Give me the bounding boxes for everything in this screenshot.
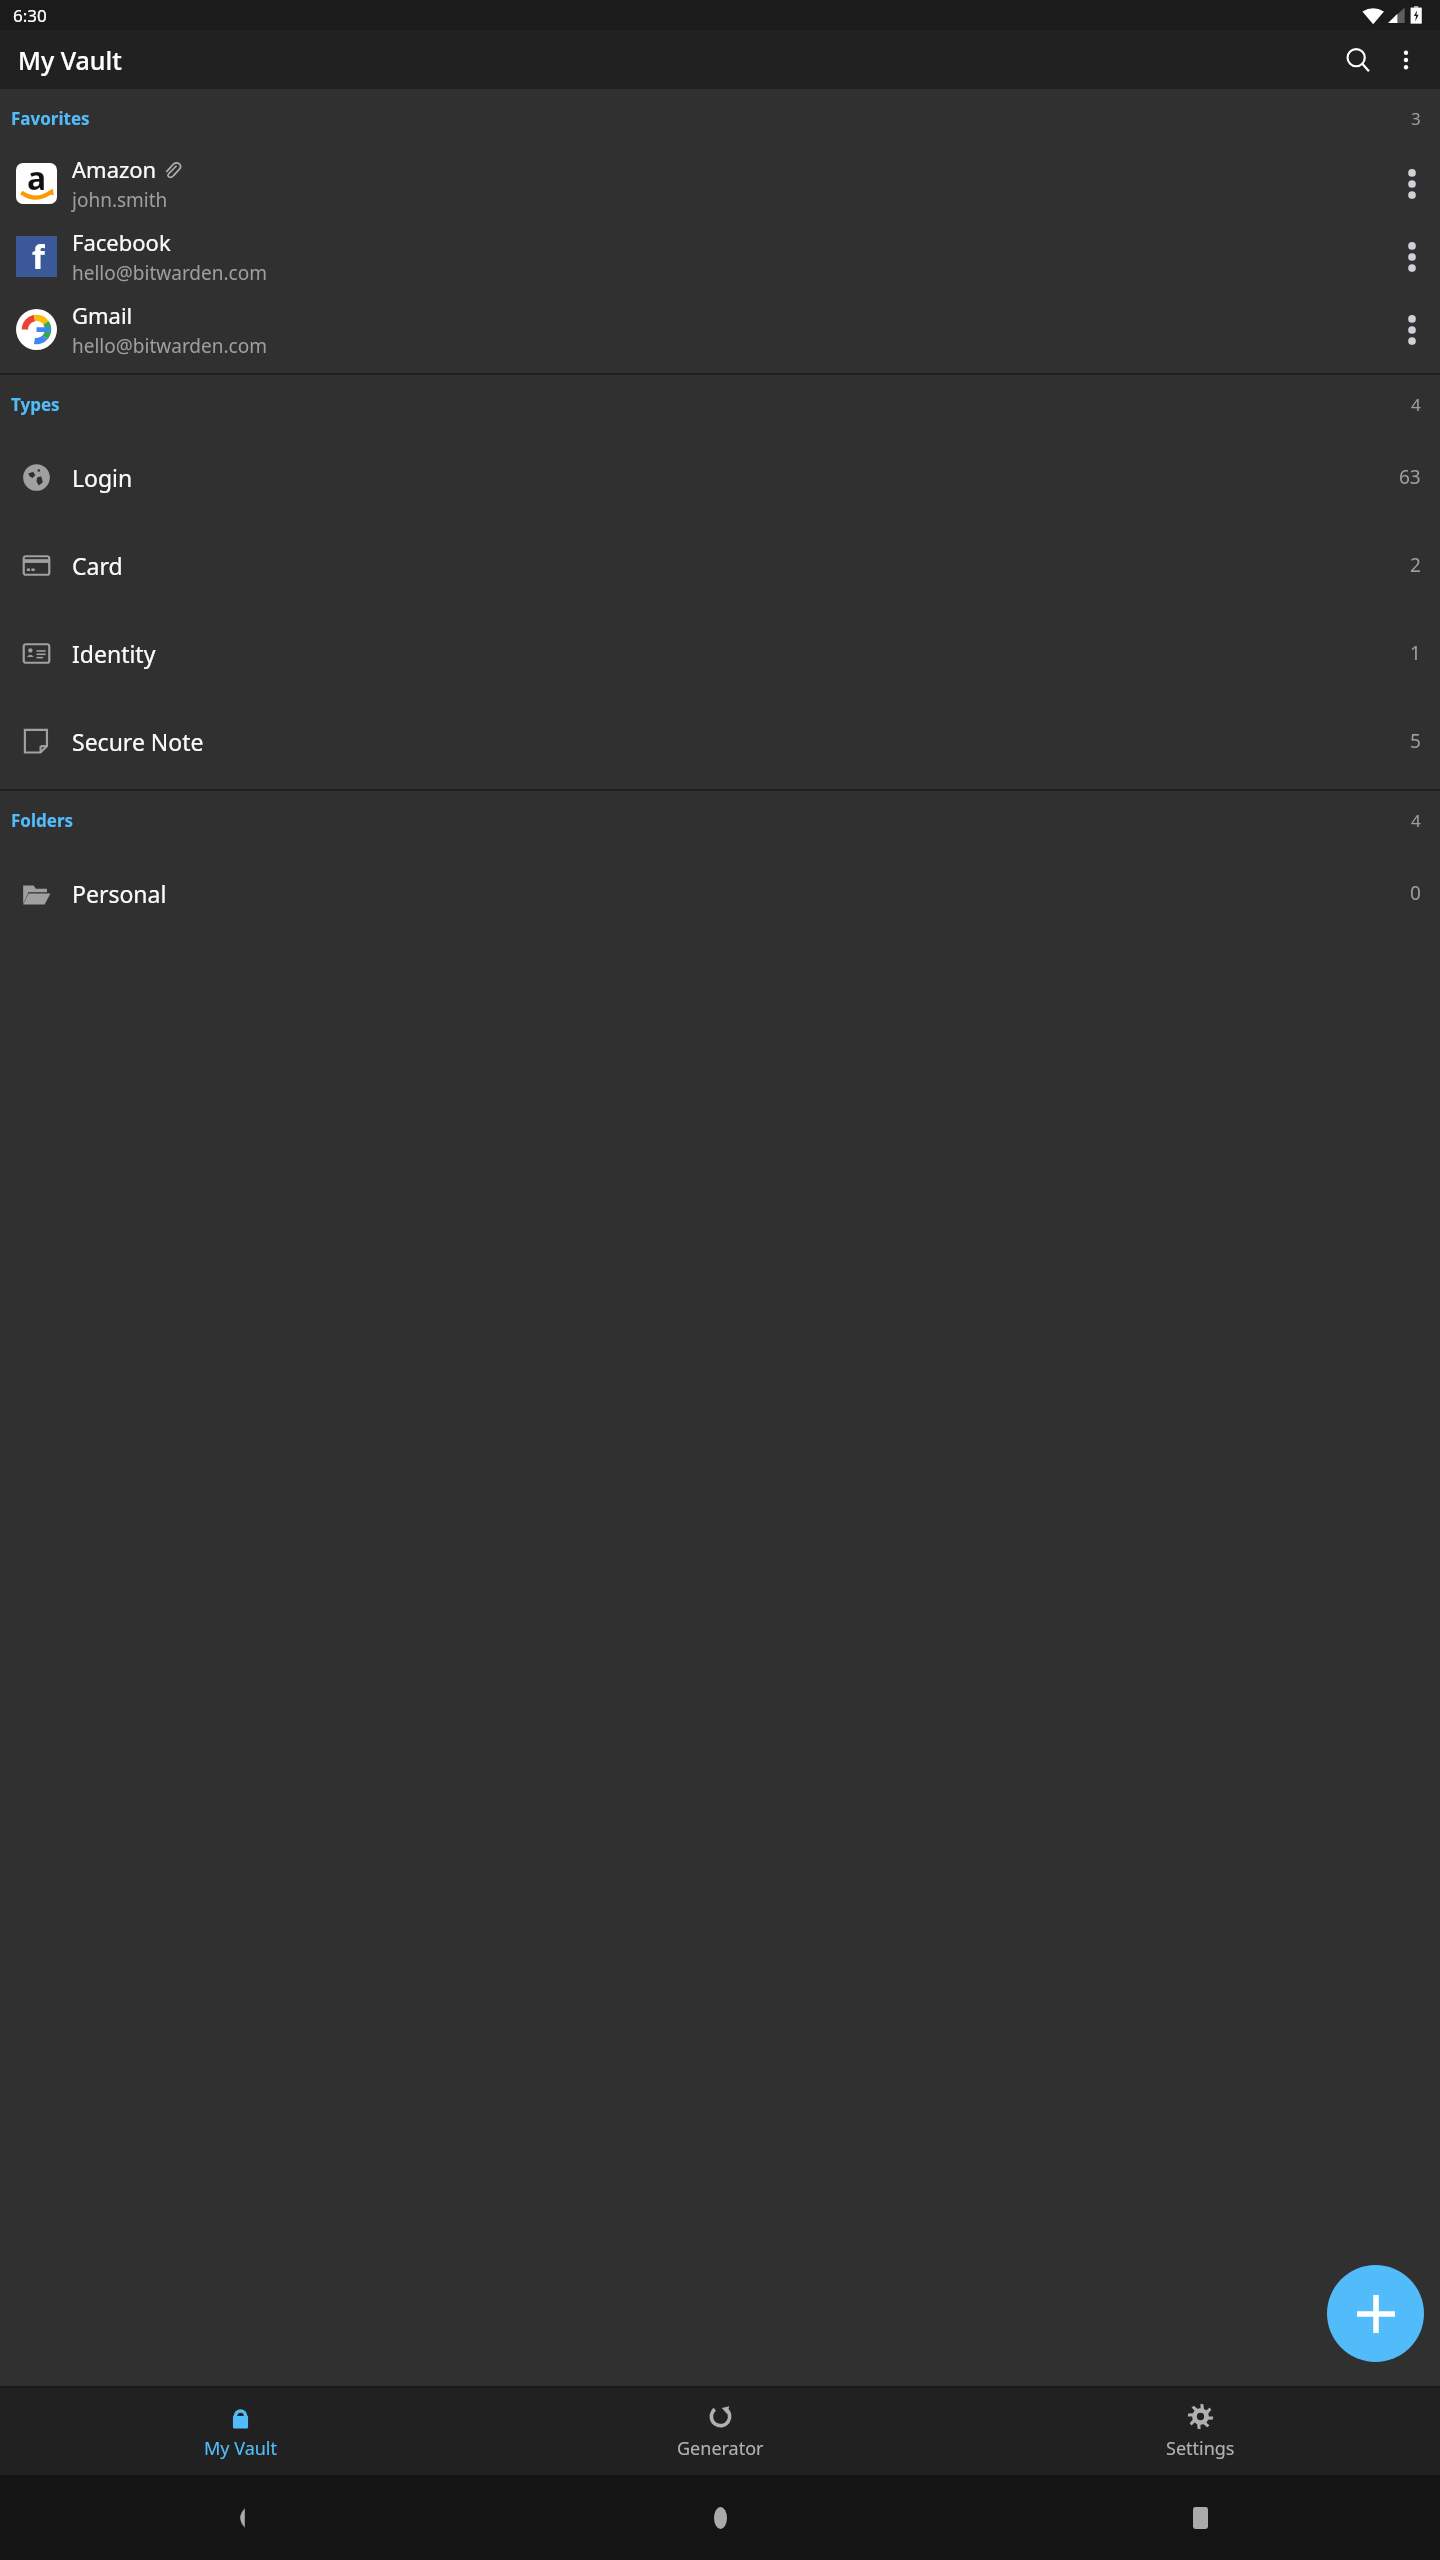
staticText: Facebook [72,227,171,257]
button[interactable]: Secure Note [0,697,1440,785]
button[interactable]: Login [0,433,1440,521]
button[interactable]: Item options [1384,147,1440,220]
staticText: hello@bitwarden.com [72,333,267,359]
button[interactable]: Generator [480,2388,960,2475]
button[interactable]: Item options [1384,220,1440,293]
staticText: f [32,234,45,275]
staticText: 63 [1399,464,1421,490]
button[interactable]: More options [1382,36,1430,84]
button[interactable]: Card [0,521,1440,609]
staticText: 3 [1411,107,1421,130]
staticText: 4 [1411,809,1421,832]
staticText: Personal [72,878,1410,909]
button[interactable]: a [0,147,1440,220]
staticText: My Vault [18,43,122,77]
staticText: Login [72,462,1399,493]
button[interactable]: Add item [1327,2265,1424,2362]
staticText: Secure Note [72,726,1410,757]
staticText: Folders [11,809,74,832]
staticText: 4 [1411,393,1421,416]
button[interactable]: Gmail [0,293,1440,366]
button[interactable]: Recent apps [960,2475,1440,2560]
button[interactable]: Search [1334,36,1382,84]
staticText: Favorites [11,107,90,130]
staticText: 6:30 [13,4,47,27]
staticText: Generator [677,2436,764,2461]
staticText: 5 [1410,728,1421,754]
staticText: hello@bitwarden.com [72,260,267,286]
button[interactable]: f [0,220,1440,293]
button[interactable]: Back [0,2475,480,2560]
staticText: My Vault [204,2436,277,2461]
staticText: 2 [1410,552,1421,578]
button[interactable]: Home [480,2475,960,2560]
staticText: Card [72,550,1410,581]
staticText: Settings [1166,2436,1235,2461]
button[interactable]: Identity [0,609,1440,697]
staticText: Gmail [72,300,133,330]
button[interactable]: My Vault [0,2388,480,2475]
button[interactable]: Item options [1384,293,1440,366]
button[interactable]: Settings [960,2388,1440,2475]
button[interactable]: Personal [0,849,1440,937]
staticText: Identity [72,638,1410,669]
staticText: Amazon [72,154,157,184]
staticText: 0 [1410,880,1421,906]
staticText: 1 [1410,640,1421,666]
staticText: Types [11,393,60,416]
staticText: john.smith [72,187,168,213]
staticText: a [27,163,47,197]
